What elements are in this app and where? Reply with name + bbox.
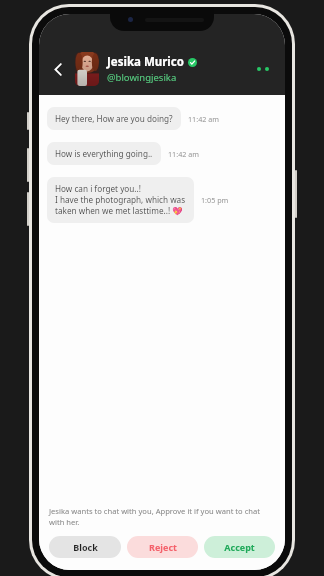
button[interactable]: Block <box>49 536 121 558</box>
staticText: Block <box>73 541 98 553</box>
button[interactable]: Accept <box>204 536 275 558</box>
button[interactable]: How can i forget you..! I have the photo… <box>47 177 194 223</box>
button[interactable]: How is everything going.. <box>47 142 161 165</box>
staticText: Hey there, How are you doing? <box>55 113 173 124</box>
staticText: How is everything going.. <box>55 148 153 159</box>
staticText: Reject <box>149 541 177 553</box>
button[interactable]: More options <box>253 63 273 75</box>
button[interactable]: Hey there, How are you doing? <box>47 107 181 130</box>
staticText: Accept <box>224 541 255 553</box>
staticText: Jesika wants to chat with you, Approve i… <box>49 506 275 527</box>
staticText: 1:05 pm <box>201 195 229 205</box>
button[interactable]: Back <box>45 56 71 82</box>
staticText: 11:42 am <box>188 114 219 124</box>
button[interactable]: Reject <box>127 536 198 558</box>
staticText: 11:42 am <box>168 149 199 159</box>
staticText: @blowingjesika <box>107 71 177 84</box>
staticText: How can i forget you..! I have the photo… <box>55 183 186 217</box>
staticText: Jesika Murico <box>107 54 184 70</box>
